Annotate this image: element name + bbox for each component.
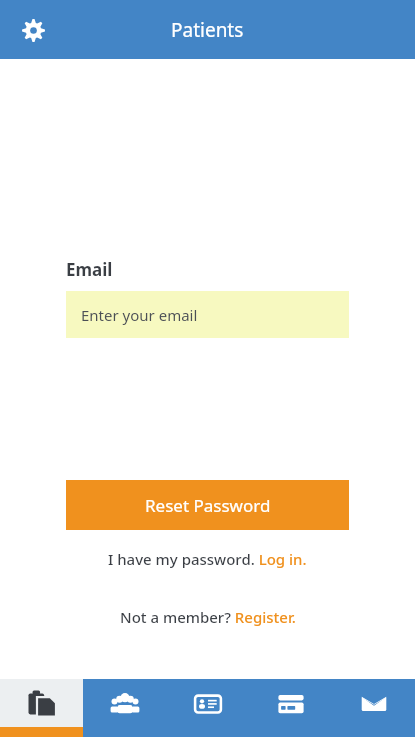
staticText: Patients — [171, 17, 244, 43]
button[interactable]: ID Card — [166, 679, 249, 737]
staticText: Reset Password — [145, 494, 271, 517]
staticText: I have my password. Log in. — [108, 549, 307, 569]
button[interactable]: Reset Password — [66, 480, 349, 530]
button[interactable]: Records — [0, 679, 83, 737]
staticText: Not a member? Register. — [120, 607, 296, 627]
button[interactable]: I have my password. Log in. — [0, 549, 415, 569]
staticText: Email — [66, 258, 113, 281]
staticText: Enter your email — [81, 305, 198, 325]
button[interactable]: Enter your email — [66, 291, 349, 338]
button[interactable]: Messages — [332, 679, 415, 737]
button[interactable]: Settings — [13, 10, 53, 50]
button[interactable]: Billing — [249, 679, 332, 737]
button[interactable]: Not a member? Register. — [0, 607, 415, 627]
button[interactable]: People — [83, 679, 166, 737]
